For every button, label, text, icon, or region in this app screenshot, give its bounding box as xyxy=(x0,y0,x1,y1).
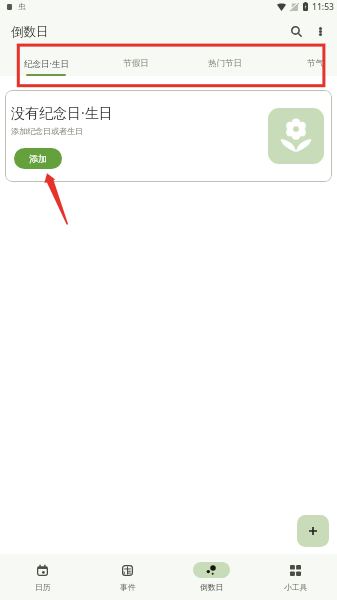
staticText: 纪念日·生日 xyxy=(24,58,69,70)
staticText: 事件 xyxy=(120,582,136,592)
button[interactable]: 日历 xyxy=(0,554,85,600)
staticText: 热门节日 xyxy=(208,58,242,69)
button[interactable]: More options xyxy=(308,19,332,43)
staticText: 没有纪念日·生日 xyxy=(11,103,113,122)
button[interactable]: 小工具 xyxy=(253,554,337,600)
staticText: 节假日 xyxy=(123,58,149,69)
button[interactable]: 节气 xyxy=(270,43,337,76)
button[interactable]: 添加 xyxy=(14,148,62,169)
staticText: 添加 xyxy=(29,153,47,164)
staticText: 节气 xyxy=(307,58,324,69)
staticText: 添加纪念日或者生日 xyxy=(11,126,83,136)
staticText: 虫 xyxy=(18,2,26,11)
staticText: 小工具 xyxy=(284,582,308,592)
button[interactable]: 热门节日 xyxy=(180,43,270,76)
staticText: 倒数日 xyxy=(11,24,49,40)
staticText: 11:53 xyxy=(312,1,335,13)
button[interactable]: Search xyxy=(284,19,308,43)
button[interactable]: 倒数日 xyxy=(169,554,253,600)
button[interactable]: 纪念日·生日 xyxy=(1,43,91,76)
button[interactable]: Add xyxy=(297,515,329,547)
staticText: 倒数日 xyxy=(200,582,224,592)
staticText: 日历 xyxy=(35,582,51,592)
button[interactable]: 节假日 xyxy=(91,43,181,76)
button[interactable]: 没有纪念日·生日 xyxy=(5,90,332,182)
button[interactable]: 事件 xyxy=(85,554,169,600)
